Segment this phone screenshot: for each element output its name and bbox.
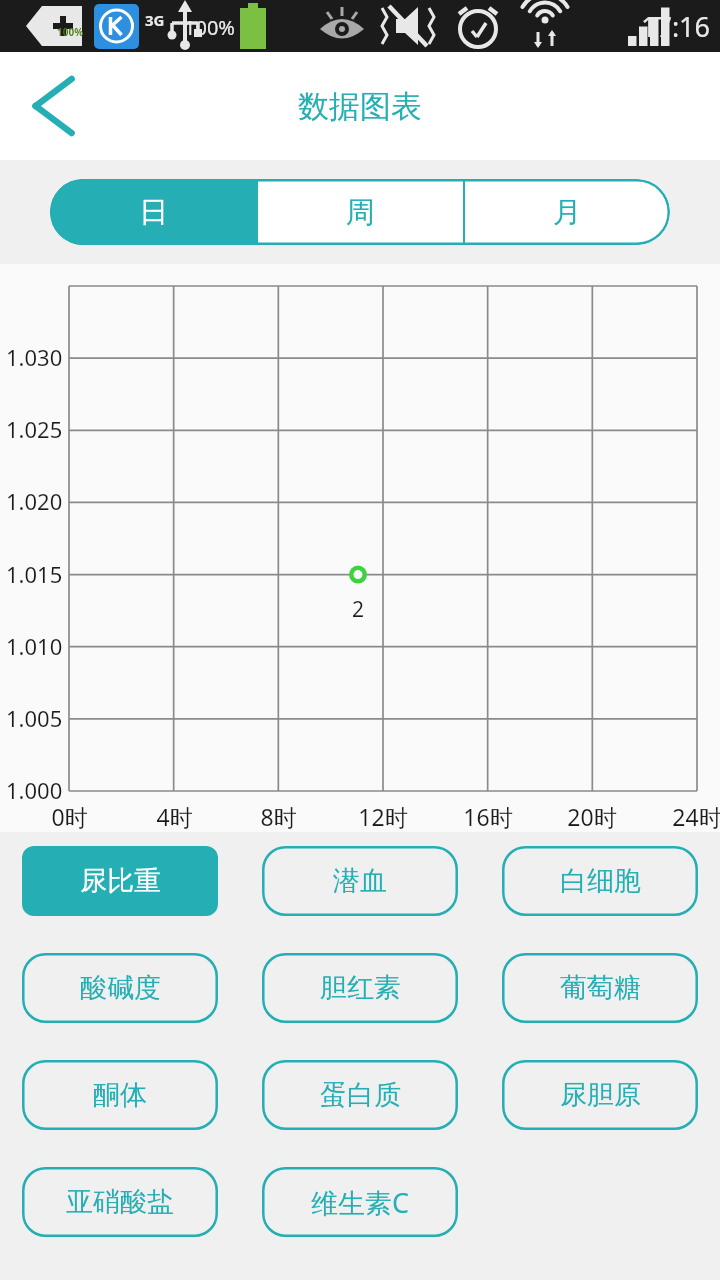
staticText: 24时 — [672, 801, 720, 832]
staticText: 1.030 — [6, 342, 63, 372]
staticText: 100% — [57, 25, 84, 39]
staticText: 4时 — [156, 801, 193, 832]
staticText: 亚硝酸盐 — [66, 1185, 174, 1219]
staticText: 0时 — [51, 801, 88, 832]
staticText: 17:16 — [641, 8, 711, 45]
staticText: 1.020 — [6, 486, 63, 516]
staticText: 葡萄糖 — [560, 971, 641, 1005]
staticText: 尿胆原 — [560, 1078, 641, 1112]
staticText: 1.015 — [6, 559, 63, 589]
button[interactable]: 周 — [258, 179, 463, 245]
staticText: 100% — [184, 14, 235, 41]
staticText: 潜血 — [333, 864, 387, 898]
staticText: 8时 — [260, 801, 297, 832]
button[interactable]: 月 — [465, 179, 670, 245]
staticText: 月 — [553, 194, 582, 231]
staticText: 酸碱度 — [80, 971, 161, 1005]
staticText: 2 — [352, 595, 365, 624]
staticText: 1.000 — [6, 775, 63, 805]
button[interactable]: Back — [12, 66, 92, 146]
button[interactable]: 维生素C — [262, 1167, 458, 1237]
button[interactable]: 尿胆原 — [502, 1060, 698, 1130]
button[interactable]: 潜血 — [262, 846, 458, 916]
button[interactable]: 白细胞 — [502, 846, 698, 916]
staticText: 尿比重 — [80, 864, 161, 898]
button[interactable]: 蛋白质 — [262, 1060, 458, 1130]
staticText: 周 — [346, 194, 375, 231]
button[interactable]: 亚硝酸盐 — [22, 1167, 218, 1237]
staticText: 白细胞 — [560, 864, 641, 898]
button[interactable]: 日 — [50, 179, 256, 245]
button[interactable]: 葡萄糖 — [502, 953, 698, 1023]
staticText: 数据图表 — [298, 87, 422, 126]
staticText: 1.005 — [6, 703, 63, 733]
staticText: 酮体 — [93, 1078, 147, 1112]
button[interactable]: 胆红素 — [262, 953, 458, 1023]
staticText: 维生素C — [311, 1184, 410, 1221]
staticText: 胆红素 — [320, 971, 401, 1005]
staticText: 16时 — [463, 801, 513, 832]
button[interactable]: 尿比重 — [22, 846, 218, 916]
staticText: 1.010 — [6, 631, 63, 661]
staticText: 1.025 — [6, 414, 63, 444]
button[interactable]: 酸碱度 — [22, 953, 218, 1023]
button[interactable]: 酮体 — [22, 1060, 218, 1130]
staticText: 12时 — [358, 801, 408, 832]
staticText: 日 — [139, 194, 168, 231]
staticText: 蛋白质 — [320, 1078, 401, 1112]
staticText: 20时 — [567, 801, 617, 832]
staticText: 3G — [145, 10, 165, 30]
